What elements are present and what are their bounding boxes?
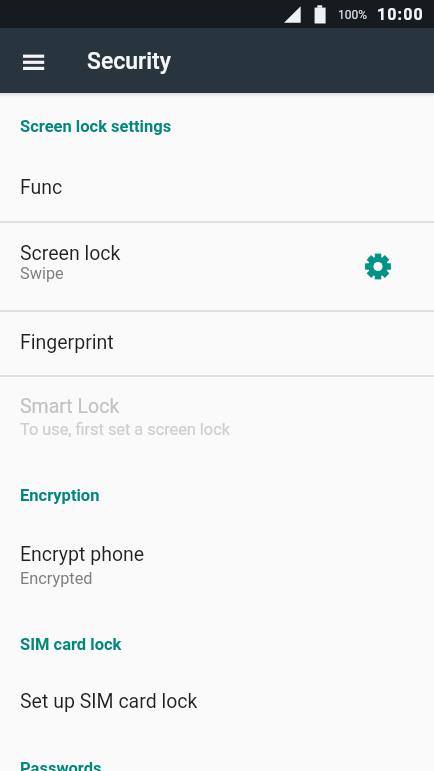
staticText: Screen lock [20,242,121,265]
button[interactable] [0,377,434,460]
button[interactable] [12,48,56,76]
staticText: Passwords [20,759,102,771]
staticText: Encryption [20,486,100,505]
staticText: Swipe [20,264,64,283]
button[interactable] [0,223,434,310]
button[interactable] [362,250,394,282]
staticText: Screen lock settings [20,117,172,136]
staticText: Encrypt phone [20,543,145,566]
button[interactable] [0,668,434,742]
button[interactable] [0,522,434,607]
staticText: Func [20,176,63,199]
button[interactable] [0,138,434,221]
staticText: Set up SIM card lock [20,690,198,713]
staticText: SIM card lock [20,635,122,654]
button[interactable] [0,312,434,375]
staticText: Fingerprint [20,331,114,354]
staticText: Smart Lock [20,395,120,418]
staticText: 10:00 [377,5,424,24]
staticText: Encrypted [20,569,93,588]
staticText: Security [87,48,171,75]
staticText: To use, first set a screen lock [20,420,230,439]
staticText: 100% [338,8,368,22]
